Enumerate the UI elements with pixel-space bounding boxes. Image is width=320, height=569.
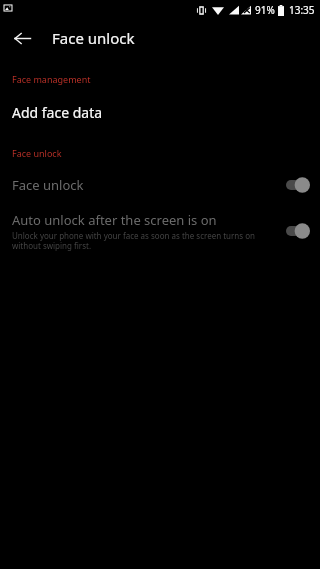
staticText: Add face data	[12, 103, 103, 122]
staticText: Face unlock	[52, 28, 135, 48]
button[interactable]: Back	[8, 24, 36, 52]
staticText: Unlock your phone with your face as soon…	[12, 230, 278, 251]
staticText: 91%	[255, 3, 275, 17]
staticText: Face management	[12, 73, 320, 85]
button[interactable]: Add face data	[0, 101, 320, 123]
staticText: Auto unlock after the screen is on	[12, 211, 217, 229]
staticText: 13:35	[289, 3, 315, 17]
button[interactable]: Auto unlock after the screen is on	[0, 211, 320, 251]
staticText: Face unlock	[12, 147, 320, 159]
staticText: Face unlock	[12, 176, 84, 194]
button[interactable]: Face unlock	[0, 176, 320, 194]
